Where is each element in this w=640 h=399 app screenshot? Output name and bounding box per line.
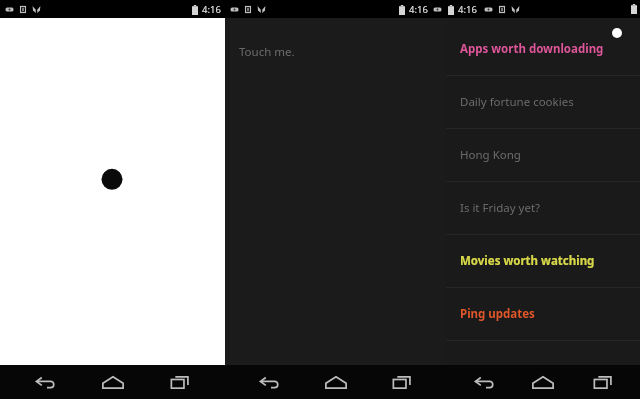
button[interactable]: Back xyxy=(23,365,67,399)
staticText: 4:16 xyxy=(458,3,477,16)
button[interactable]: Recent apps xyxy=(158,365,202,399)
button[interactable]: Is it Friday yet? xyxy=(446,182,640,234)
staticText: Daily fortune cookies xyxy=(460,94,574,110)
button[interactable]: Recent apps xyxy=(380,365,424,399)
staticText: Movies worth watching xyxy=(460,253,595,269)
button[interactable]: Recent apps xyxy=(581,365,625,399)
button[interactable]: Apps worth downloading xyxy=(446,23,640,75)
staticText: Is it Friday yet? xyxy=(460,200,541,216)
staticText: Ping updates xyxy=(460,306,535,322)
staticText: Hong Kong xyxy=(460,147,521,163)
staticText: Apps worth downloading xyxy=(460,41,604,57)
button[interactable]: Home xyxy=(521,365,565,399)
button[interactable]: Back xyxy=(462,365,506,399)
button[interactable] xyxy=(0,18,225,365)
button[interactable]: Home xyxy=(91,365,135,399)
staticText: 4:16 xyxy=(202,3,221,16)
button[interactable]: Hong Kong xyxy=(446,129,640,181)
staticText: Touch me. xyxy=(239,44,295,60)
button[interactable]: Back xyxy=(247,365,291,399)
button[interactable]: Home xyxy=(314,365,358,399)
staticText: 4:16 xyxy=(409,3,428,16)
button[interactable]: Movies worth watching xyxy=(446,235,640,287)
button[interactable]: Ping updates xyxy=(446,288,640,340)
button[interactable]: Daily fortune cookies xyxy=(446,76,640,128)
